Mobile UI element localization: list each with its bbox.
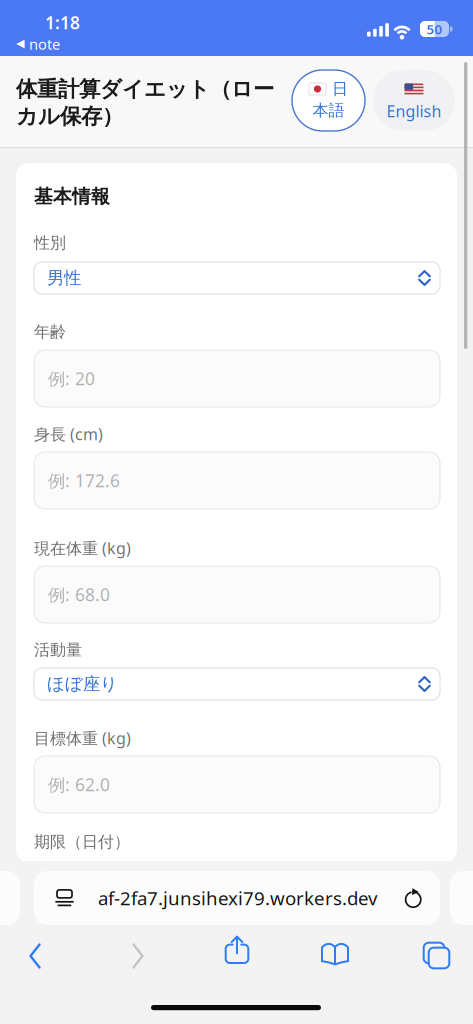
- button[interactable]: 男性: [34, 262, 440, 294]
- button[interactable]: Share: [223, 934, 251, 966]
- staticText: カル保存）: [16, 103, 123, 129]
- staticText: af-2fa7.junsihexi79.workers.dev: [98, 886, 377, 910]
- staticText: 期限（日付）: [34, 832, 130, 852]
- staticText: 例: 20: [48, 367, 95, 390]
- button[interactable]: af-2fa7.junsihexi79.workers.dev: [34, 871, 440, 925]
- button[interactable]: 日: [292, 70, 365, 131]
- staticText: 基本情報: [34, 185, 110, 208]
- staticText: 本語: [312, 101, 344, 120]
- staticText: English: [386, 100, 441, 122]
- staticText: 体重計算ダイエット（ロー: [16, 76, 274, 102]
- button[interactable]: ほぼ座り: [34, 668, 440, 700]
- staticText: ほぼ座り: [47, 673, 118, 695]
- staticText: 現在体重 (kg): [34, 537, 131, 559]
- staticText: 例: 62.0: [48, 773, 110, 796]
- staticText: 50: [426, 20, 442, 38]
- button[interactable]: Forward: [124, 939, 152, 973]
- staticText: 身長 (cm): [34, 423, 103, 445]
- button[interactable]: Back: [22, 939, 50, 973]
- staticText: 例: 68.0: [48, 583, 110, 606]
- staticText: 例: 172.6: [48, 469, 120, 492]
- staticText: 男性: [47, 267, 81, 289]
- staticText: 1:18: [45, 11, 80, 34]
- staticText: 活動量: [34, 640, 82, 660]
- staticText: 性別: [34, 233, 66, 253]
- button[interactable]: Tabs: [422, 940, 450, 970]
- button[interactable]: English: [373, 70, 455, 131]
- staticText: 目標体重 (kg): [34, 727, 131, 749]
- staticText: note: [29, 34, 60, 54]
- button[interactable]: note: [16, 36, 60, 52]
- button[interactable]: Bookmarks: [320, 941, 350, 967]
- staticText: 日: [332, 79, 348, 99]
- staticText: 年齢: [34, 322, 66, 342]
